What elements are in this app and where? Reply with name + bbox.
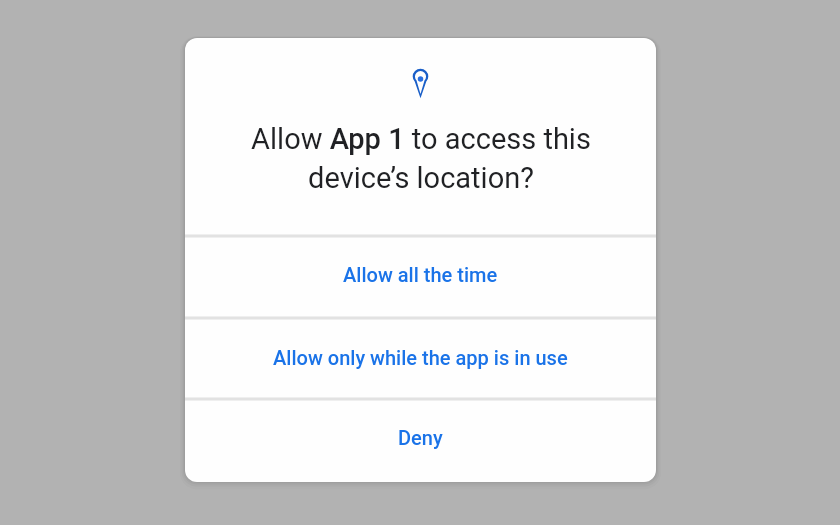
staticText: Allow only while the app is in use (273, 346, 568, 369)
button[interactable]: Allow all the time (185, 232, 656, 317)
staticText: Allow App 1 to access this device’s loca… (251, 122, 591, 195)
button[interactable]: Allow only while the app is in use (185, 317, 656, 397)
staticText: Allow all the time (343, 263, 498, 286)
staticText: Deny (398, 426, 443, 449)
button[interactable]: Deny (185, 394, 656, 480)
